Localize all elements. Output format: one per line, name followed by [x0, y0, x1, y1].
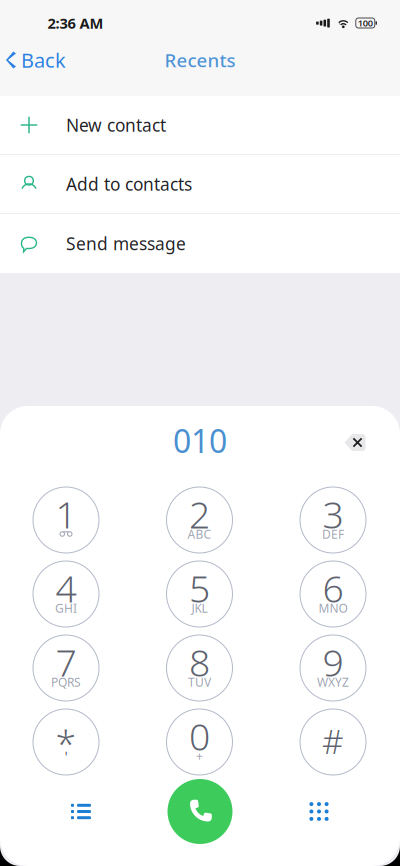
button[interactable]: 4 [33, 561, 99, 627]
button[interactable]: 1 [33, 487, 99, 553]
staticText: Add to contacts [66, 172, 192, 195]
button[interactable]: New contact [0, 96, 400, 155]
staticText: 7 [55, 637, 76, 687]
button[interactable]: Delete [333, 422, 377, 466]
staticText: 6 [322, 563, 343, 613]
staticText: ' [64, 746, 67, 766]
button[interactable]: 3 [300, 487, 366, 553]
staticText: WXYZ [317, 674, 349, 690]
button[interactable]: 0 [166, 709, 232, 775]
staticText: 3 [322, 489, 343, 539]
button[interactable]: 5 [166, 561, 232, 627]
staticText: 1 [55, 489, 76, 539]
staticText: 010 [173, 419, 227, 462]
staticText: 0 [189, 711, 210, 761]
button[interactable]: 2 [166, 487, 232, 553]
staticText: PQRS [51, 674, 81, 690]
button[interactable]: Send message [0, 214, 400, 273]
button[interactable]: * [33, 709, 99, 775]
button[interactable]: Add to contacts [0, 155, 400, 214]
staticText: 2:36 AM [47, 13, 103, 33]
staticText: Back [21, 47, 66, 73]
staticText: 100 [358, 17, 373, 29]
staticText: * [55, 718, 76, 768]
staticText: + [196, 748, 203, 764]
staticText: ABC [187, 526, 211, 542]
button[interactable]: # [300, 709, 366, 775]
staticText: TUV [188, 674, 211, 690]
staticText: Recents [164, 48, 235, 72]
button[interactable]: 9 [300, 635, 366, 701]
staticText: # [322, 719, 344, 763]
staticText: 4 [55, 563, 76, 613]
staticText: GHI [55, 600, 77, 616]
staticText: New contact [66, 113, 166, 136]
button[interactable]: Back [0, 38, 76, 96]
staticText: 2 [189, 489, 210, 539]
button[interactable]: Recents [51, 781, 111, 841]
staticText: 5 [189, 563, 210, 613]
staticText: DEF [322, 526, 344, 542]
button[interactable]: Keypad [289, 781, 349, 841]
button[interactable]: 6 [300, 561, 366, 627]
staticText: MNO [318, 600, 347, 616]
staticText: JKL [191, 600, 207, 616]
staticText: Send message [66, 232, 186, 255]
staticText: 8 [189, 637, 210, 687]
button[interactable]: Call [167, 779, 232, 844]
button[interactable]: 8 [166, 635, 232, 701]
button[interactable]: 7 [33, 635, 99, 701]
staticText: 9 [322, 637, 343, 687]
